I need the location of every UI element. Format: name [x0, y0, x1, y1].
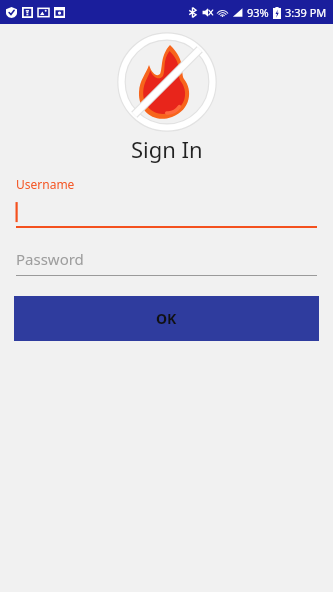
- other: App logo: no fire: [117, 32, 217, 132]
- staticText: 93%: [247, 5, 269, 20]
- button[interactable]: Username: [16, 176, 317, 228]
- staticText: 3:39 PM: [285, 5, 327, 20]
- staticText: Sign In: [131, 134, 203, 164]
- staticText: Password: [16, 249, 84, 269]
- staticText: OK: [156, 309, 177, 328]
- staticText: Username: [16, 176, 75, 192]
- button[interactable]: Password: [16, 246, 317, 276]
- button[interactable]: OK: [14, 296, 319, 341]
